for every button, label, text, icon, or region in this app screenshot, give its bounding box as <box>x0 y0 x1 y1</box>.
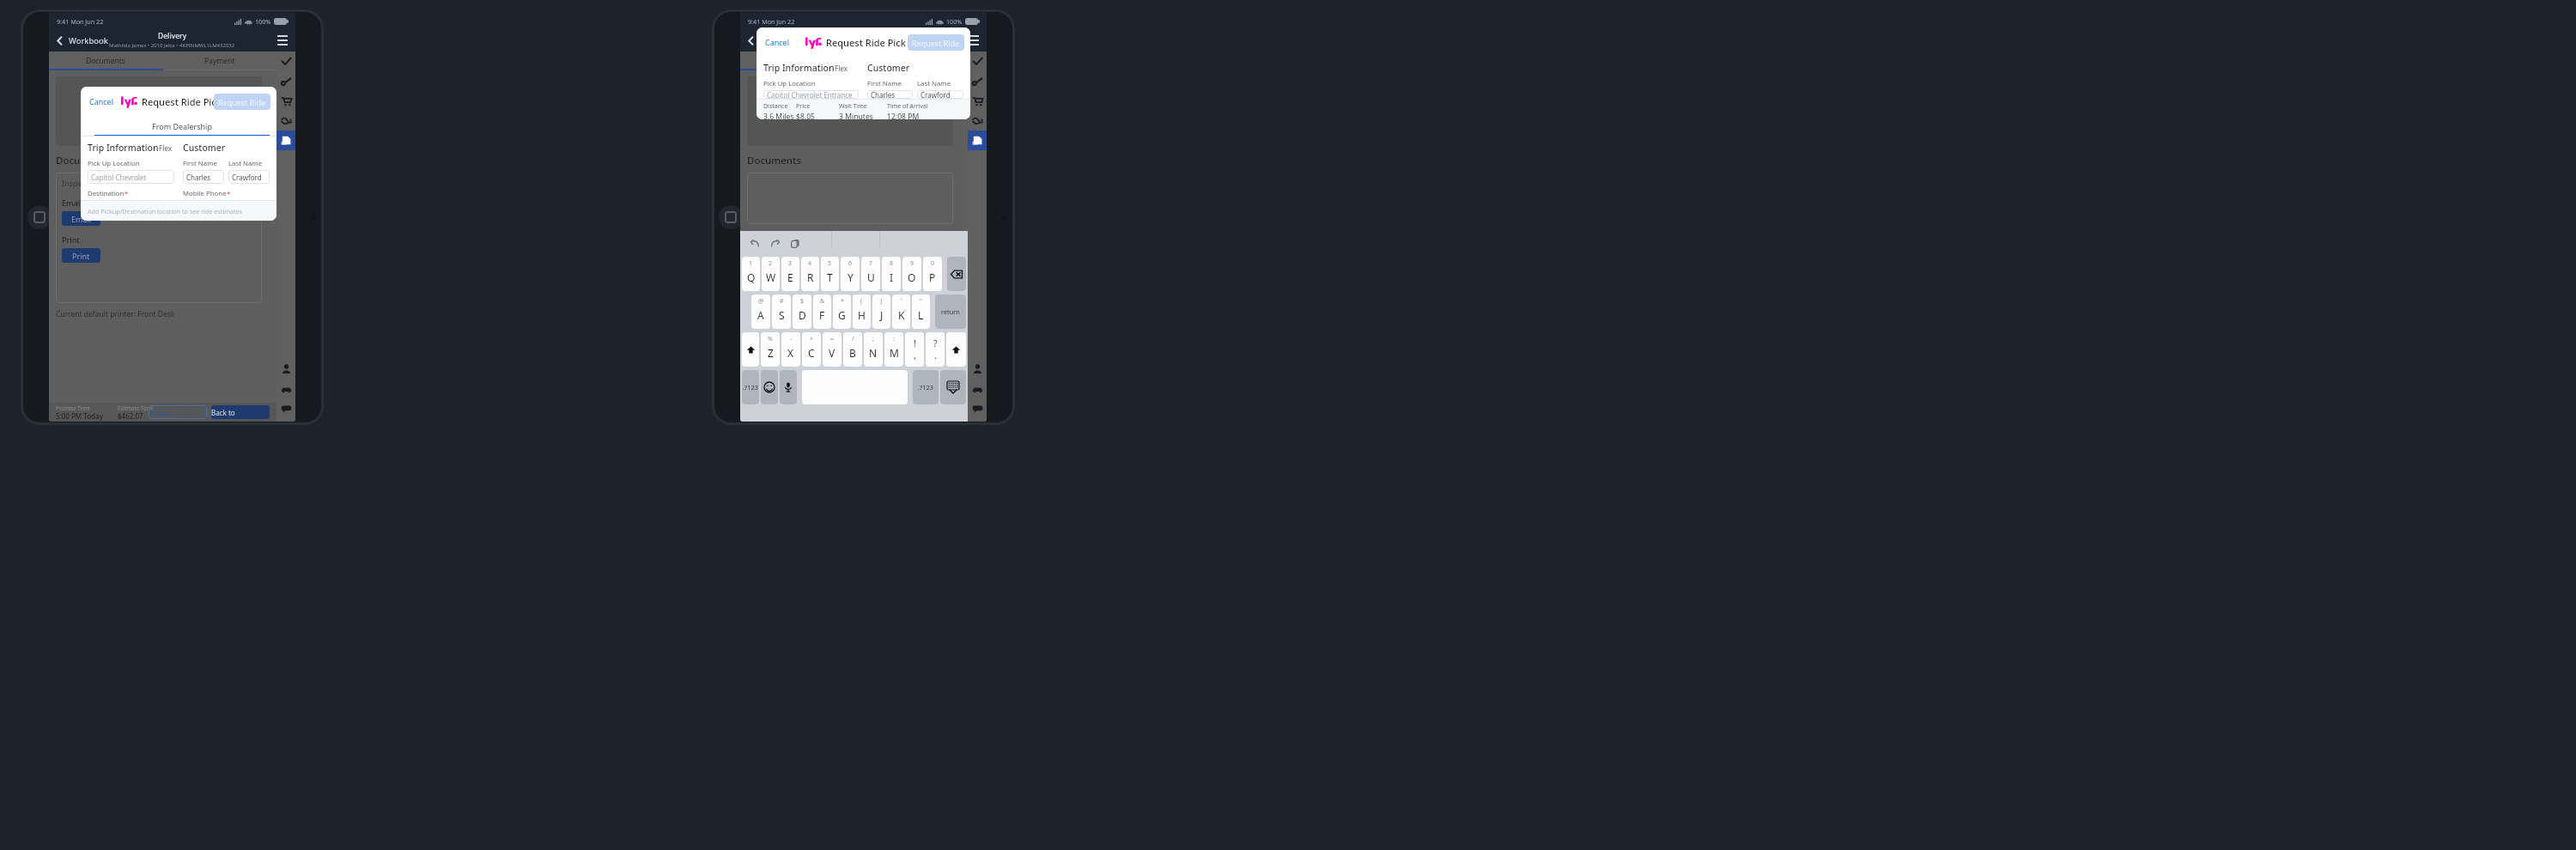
button[interactable]: Handshake <box>276 111 295 131</box>
button[interactable]: Dictation <box>780 370 797 404</box>
button[interactable]: Customer <box>276 359 295 379</box>
button[interactable]: Undo <box>750 238 760 248</box>
button[interactable]: ) <box>872 294 890 329</box>
button[interactable]: 4 <box>801 257 819 291</box>
button[interactable]: Email <box>62 211 100 226</box>
staticText: Flex Ride <box>159 143 174 153</box>
staticText: Add Pickup/Destination location to see r… <box>88 207 243 216</box>
button[interactable]: Shift <box>946 332 966 367</box>
button[interactable]: Documents <box>968 131 987 150</box>
button[interactable]: Back to Workbook <box>211 405 270 419</box>
button[interactable]: Inspect <box>276 150 295 170</box>
button[interactable]: Print <box>62 248 100 263</box>
staticText: From Dealership <box>152 121 212 131</box>
staticText: .?123 <box>743 383 758 392</box>
button[interactable]: Documents <box>276 131 295 150</box>
button[interactable] <box>802 370 908 404</box>
button[interactable]: Capitol Chevrolet Entrance <box>88 170 174 184</box>
button[interactable]: Numbers <box>913 370 939 404</box>
button[interactable]: Vehicle <box>276 379 295 398</box>
button[interactable]: " <box>912 294 930 329</box>
staticText: 3 <box>788 259 793 268</box>
button[interactable]: Capitol Chevrolet Entrance <box>763 90 859 99</box>
button[interactable]: + <box>802 332 821 367</box>
staticText: $ <box>800 297 805 306</box>
button[interactable]: Cart <box>276 91 295 111</box>
button[interactable]: Cancel <box>87 94 117 109</box>
button[interactable]: 3 <box>781 257 799 291</box>
button[interactable]: 8 <box>882 257 901 291</box>
button[interactable]: / <box>843 332 862 367</box>
staticText: $8.05 <box>796 112 815 119</box>
button[interactable]: Messages <box>276 398 295 418</box>
staticText: G <box>838 308 846 322</box>
button[interactable]: Payment <box>854 52 968 70</box>
button[interactable]: Crawford <box>917 90 963 99</box>
button[interactable]: Request Ride <box>214 94 270 110</box>
button[interactable]: 1 <box>742 257 760 291</box>
button[interactable]: Emoji <box>761 370 778 404</box>
button[interactable]: Redo <box>770 238 781 248</box>
button[interactable]: ? <box>926 332 945 367</box>
button[interactable]: ( <box>853 294 871 329</box>
button[interactable]: 0 <box>923 257 942 291</box>
button[interactable]: Back <box>54 33 110 49</box>
button[interactable]: = <box>823 332 841 367</box>
button[interactable]: Checklist <box>968 52 987 71</box>
button[interactable]: Inspect <box>968 150 987 170</box>
button[interactable]: Numbers <box>742 370 759 404</box>
button[interactable]: Menu <box>967 33 981 47</box>
button[interactable]: Back <box>745 33 801 49</box>
button[interactable]: Checklist <box>276 52 295 71</box>
button[interactable]: Service <box>276 71 295 91</box>
button[interactable]: 7 <box>861 257 880 291</box>
button[interactable]: 2 <box>762 257 780 291</box>
button[interactable]: * <box>833 294 851 329</box>
button[interactable]: Crawford <box>228 170 270 184</box>
button[interactable]: 5 <box>821 257 839 291</box>
button[interactable]: : <box>884 332 903 367</box>
button[interactable]: Messages <box>968 398 987 418</box>
button[interactable]: Request Rideshare <box>149 405 207 419</box>
staticText: 9:41 Mon Jun 22 <box>748 17 795 26</box>
staticText: T <box>827 270 833 284</box>
button[interactable]: ; <box>864 332 883 367</box>
button[interactable]: Service <box>968 71 987 91</box>
staticText: Documents <box>56 154 110 167</box>
button[interactable]: 6 <box>841 257 860 291</box>
button[interactable]: Payment <box>162 52 276 70</box>
button[interactable]: From Dealership <box>88 116 276 137</box>
button[interactable]: Customer <box>968 359 987 379</box>
button[interactable]: @ <box>751 294 770 329</box>
button[interactable]: Backspace <box>947 257 966 291</box>
button[interactable]: Request Ride <box>908 34 964 51</box>
button[interactable]: Cancel <box>762 34 793 50</box>
staticText: Time of Arrival <box>887 102 928 111</box>
button[interactable]: Return <box>935 294 966 329</box>
button[interactable]: Hide keyboard <box>940 370 966 404</box>
button[interactable]: Shift <box>742 332 759 367</box>
staticText: C <box>808 346 815 360</box>
button[interactable]: Documents <box>49 52 162 70</box>
button[interactable]: Handshake <box>968 111 987 131</box>
button[interactable]: Paste <box>791 239 800 248</box>
button[interactable]: Cart <box>968 91 987 111</box>
button[interactable]: - <box>781 332 800 367</box>
button[interactable]: ' <box>892 294 910 329</box>
button[interactable]: % <box>761 332 780 367</box>
staticText: R <box>807 270 814 284</box>
button[interactable]: Documents <box>740 52 854 70</box>
button[interactable]: 9 <box>902 257 921 291</box>
button[interactable]: $ <box>793 294 811 329</box>
staticText: 6 <box>848 259 853 268</box>
button[interactable]: Charles <box>183 170 224 184</box>
button[interactable]: Charles <box>867 90 913 99</box>
staticText: Request Ride Pick Up <box>142 95 237 108</box>
button[interactable]: ! <box>905 332 924 367</box>
button[interactable]: # <box>772 294 791 329</box>
staticText: Print <box>62 234 80 245</box>
button[interactable]: Vehicle <box>968 379 987 398</box>
button[interactable]: & <box>813 294 831 329</box>
staticText: # <box>780 297 784 306</box>
button[interactable]: Menu <box>276 33 289 47</box>
